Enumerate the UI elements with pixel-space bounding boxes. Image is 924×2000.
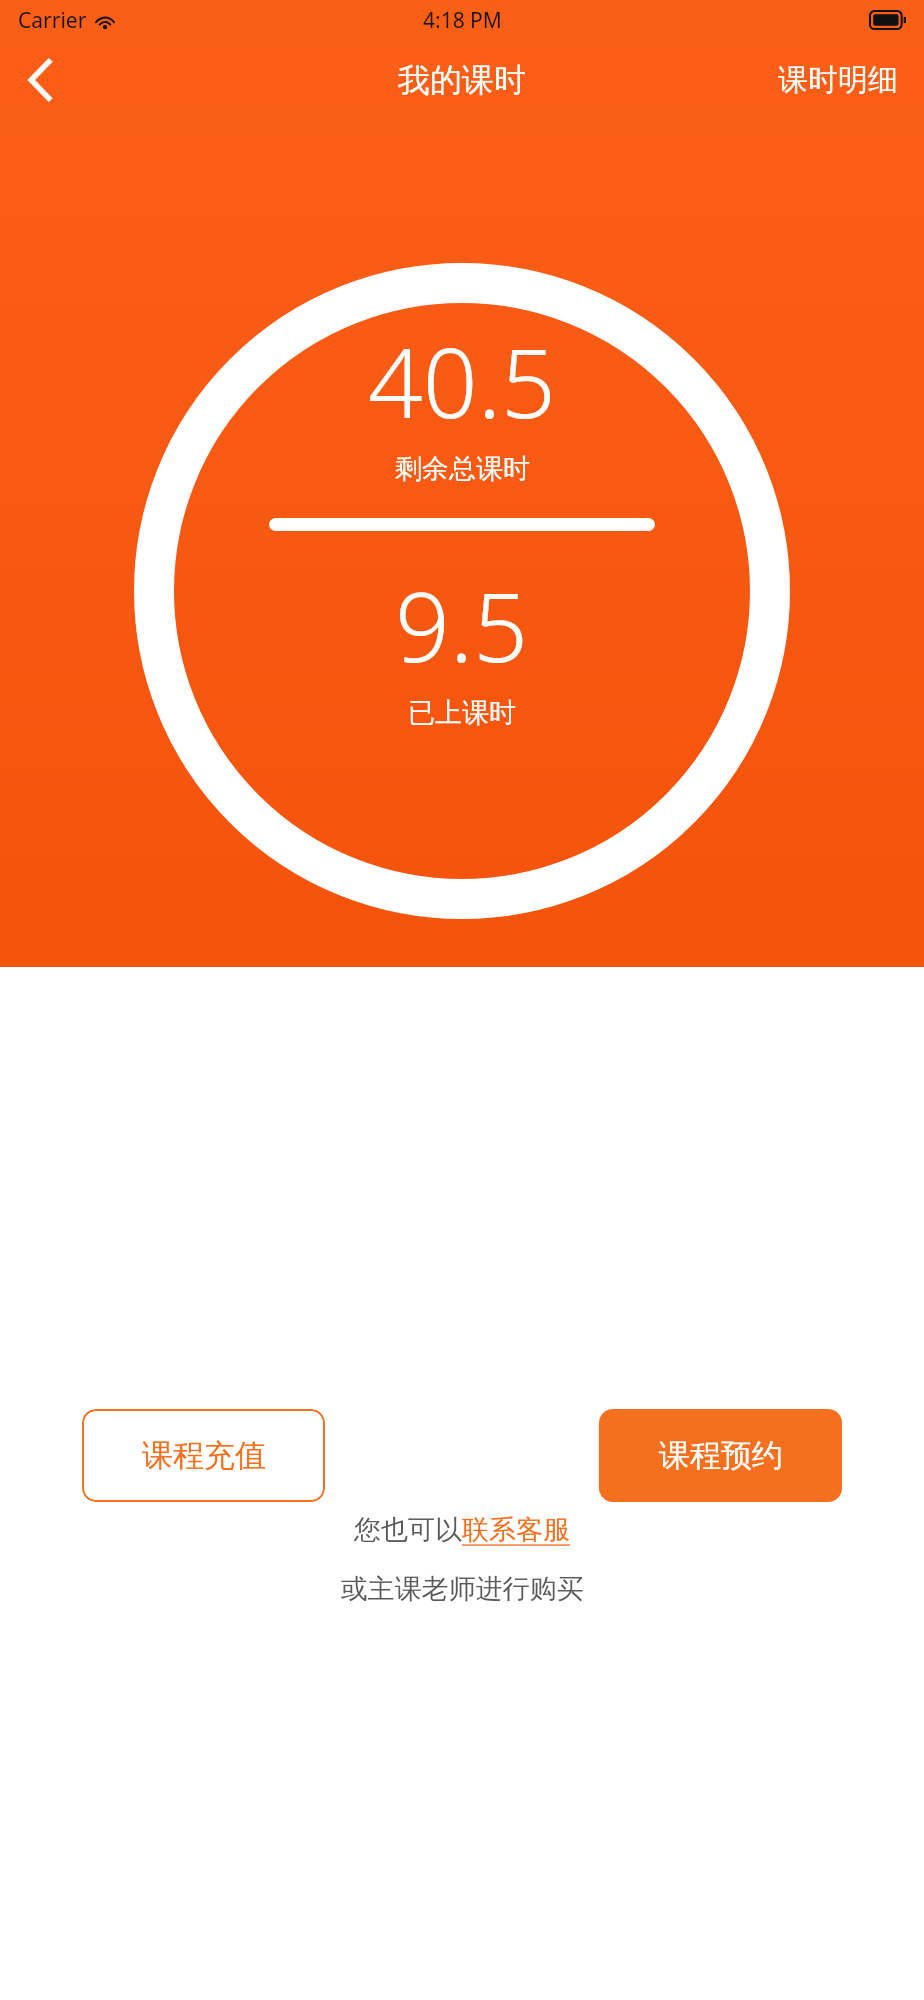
button[interactable]: 课程预约	[599, 1409, 842, 1502]
button[interactable]: Back	[0, 40, 80, 120]
staticText: 课程预约	[659, 1436, 783, 1475]
staticText: 课时明细	[778, 61, 898, 99]
staticText: 9.5	[395, 559, 529, 690]
staticText: 或主课老师进行购买	[0, 1572, 924, 1606]
staticText: 40.5	[368, 315, 556, 446]
staticText: Carrier	[18, 6, 87, 35]
staticText: 4:18 PM	[423, 6, 502, 35]
staticText: 已上课时	[408, 696, 516, 730]
button[interactable]: 联系客服	[462, 1513, 570, 1547]
button[interactable]: 课程充值	[82, 1409, 325, 1502]
staticText: 剩余总课时	[395, 452, 530, 486]
staticText: 联系客服	[462, 1513, 570, 1547]
button[interactable]: 课时明细	[774, 53, 902, 107]
staticText: 课程充值	[142, 1436, 266, 1475]
staticText: 您也可以	[354, 1513, 462, 1547]
staticText: 我的课时	[398, 60, 526, 100]
